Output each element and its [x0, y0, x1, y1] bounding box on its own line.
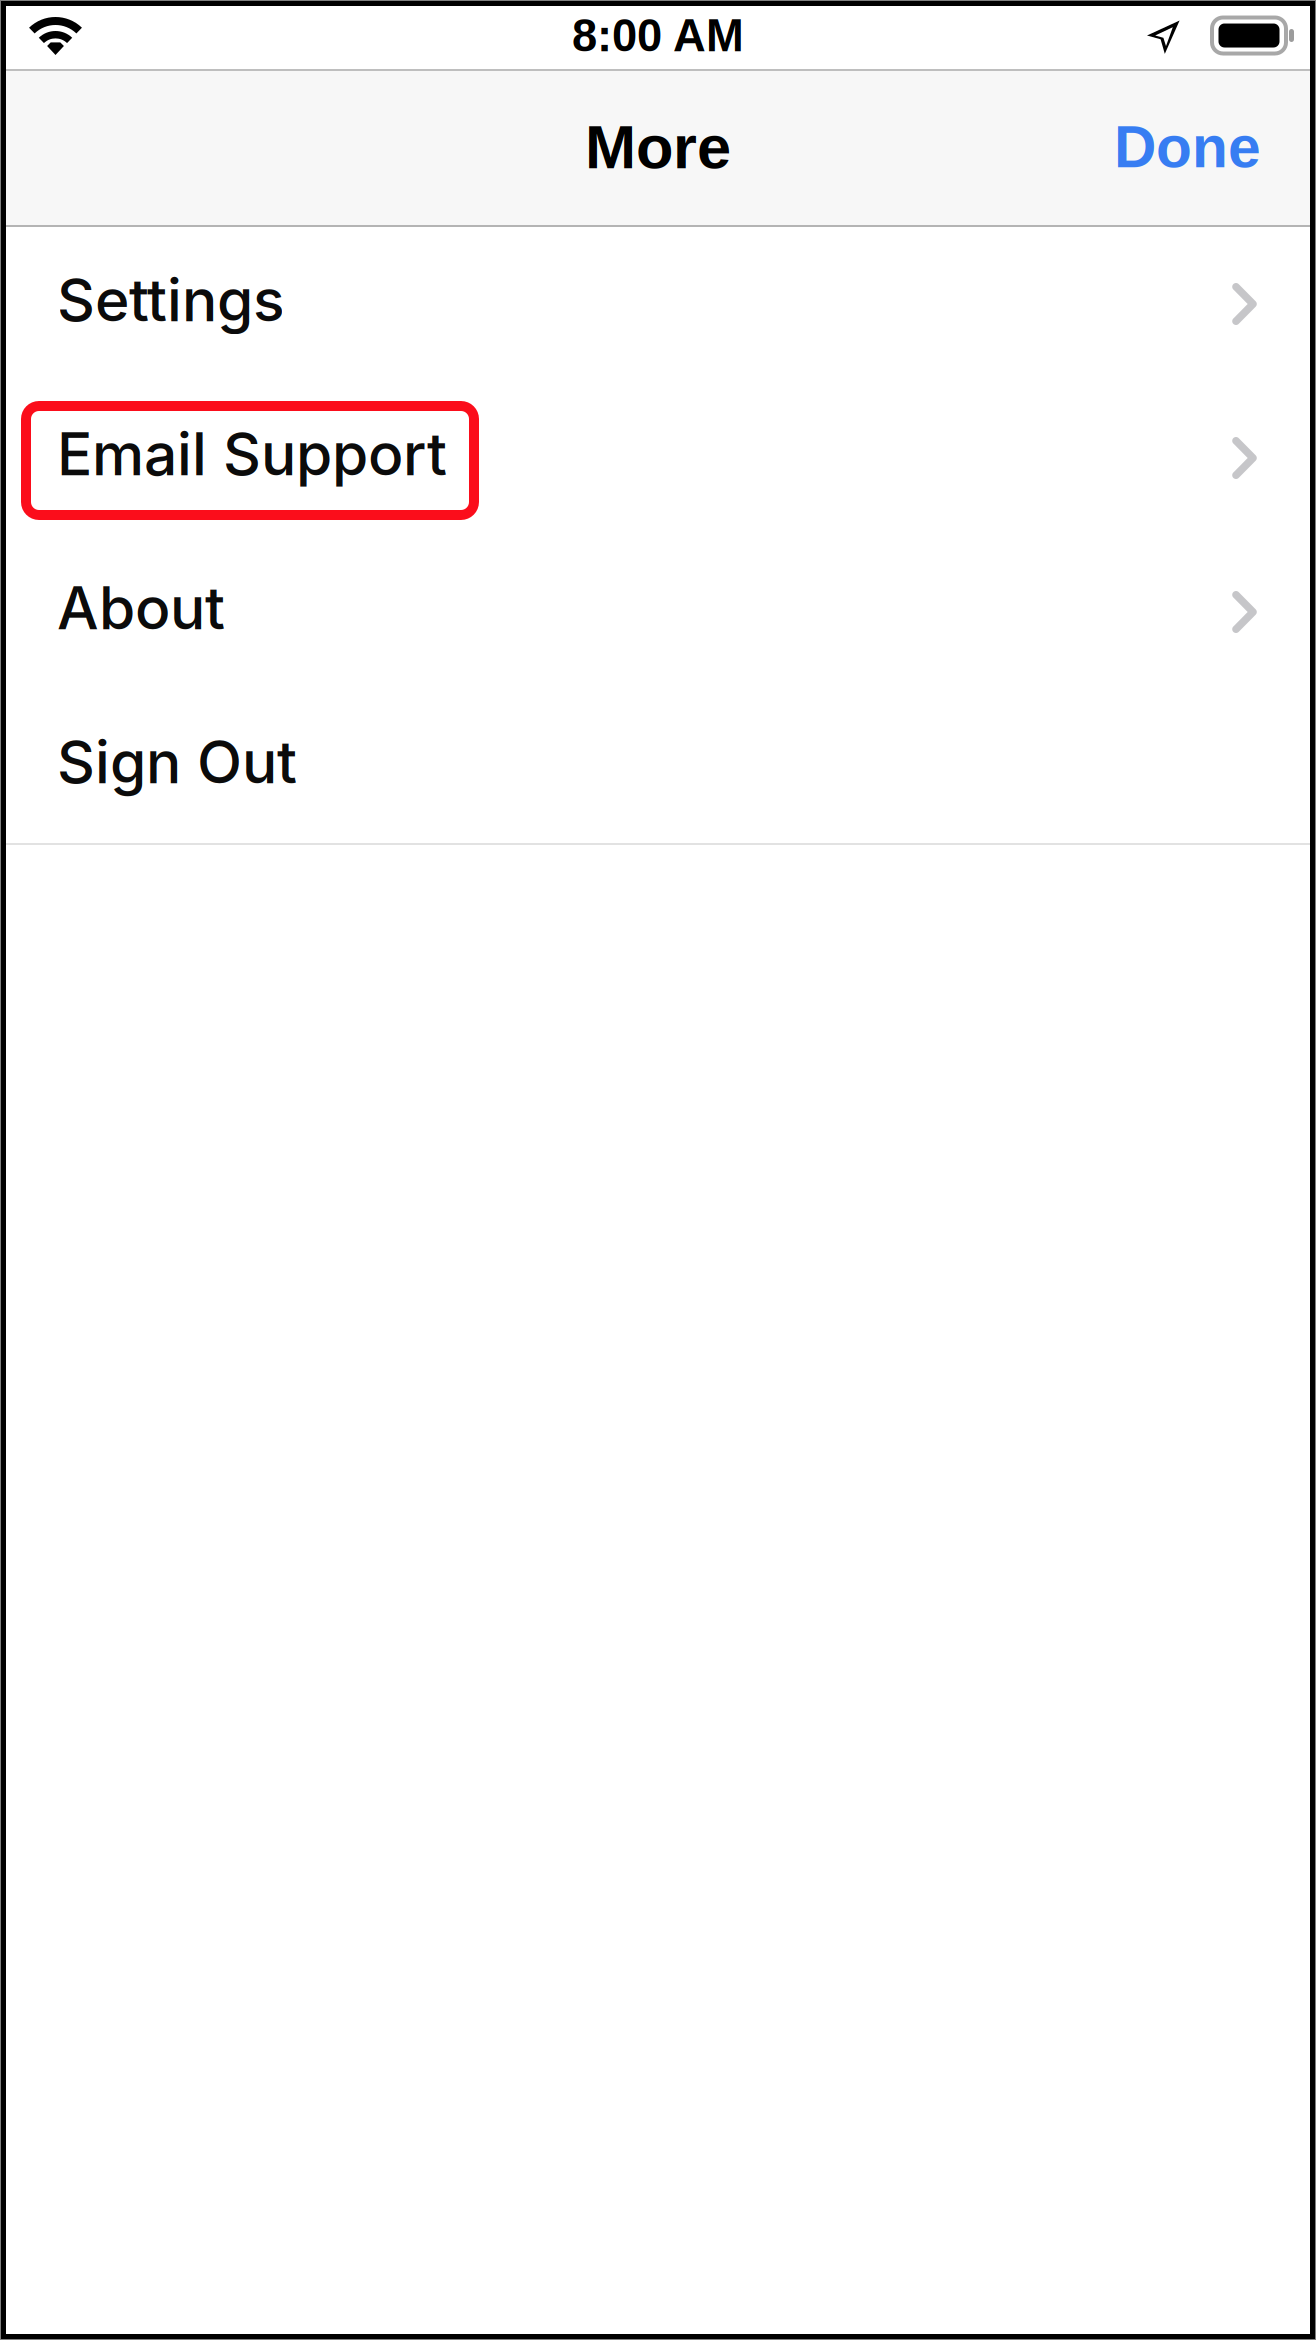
button[interactable]: Settings: [6, 227, 1310, 381]
staticText: Done: [1114, 114, 1261, 180]
button[interactable]: Sign Out: [6, 689, 1310, 843]
staticText: Settings: [57, 264, 285, 335]
staticText: About: [57, 572, 225, 643]
button[interactable]: Done: [1074, 71, 1310, 225]
staticText: 8:00 AM: [572, 10, 744, 61]
button[interactable]: About: [6, 535, 1310, 689]
button[interactable]: Email Support: [6, 381, 1310, 535]
staticText: Sign Out: [57, 726, 297, 797]
staticText: Email Support: [57, 418, 447, 489]
staticText: More: [585, 113, 731, 181]
